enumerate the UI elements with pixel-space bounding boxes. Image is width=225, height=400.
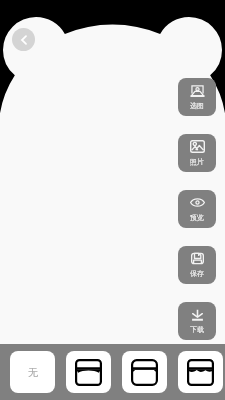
button[interactable]: 照片: [178, 134, 216, 172]
staticText: 预览: [190, 213, 204, 222]
staticText: 保存: [190, 269, 204, 278]
button[interactable]: 保存: [178, 246, 216, 284]
staticText: 下载: [190, 325, 204, 334]
staticText: 选图: [190, 101, 204, 110]
staticText: 照片: [190, 157, 204, 166]
button[interactable]: 预览: [178, 190, 216, 228]
button[interactable]: 选图: [178, 78, 216, 116]
button[interactable]: 无: [10, 351, 55, 393]
staticText: 无: [28, 366, 38, 379]
button[interactable]: 下载: [178, 302, 216, 340]
button[interactable]: Back: [12, 28, 35, 51]
button[interactable]: Frame style 3: [178, 351, 223, 393]
button[interactable]: Frame style 2: [122, 351, 167, 393]
button[interactable]: Frame style 1: [66, 351, 111, 393]
